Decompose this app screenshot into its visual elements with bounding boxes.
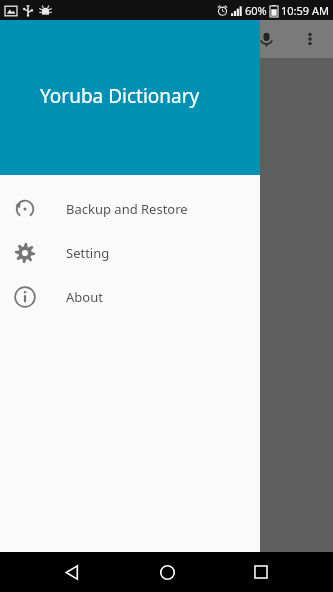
- button[interactable]: Setting: [0, 231, 260, 275]
- staticText: NEXT: [0, 241, 33, 259]
- staticText: About: [66, 288, 103, 306]
- staticText: 60%: [245, 3, 267, 18]
- button[interactable]: NEXT: [0, 241, 33, 259]
- button[interactable]: Home: [145, 552, 189, 592]
- staticText: 10:59 AM: [281, 3, 329, 18]
- staticText: Setting: [66, 244, 110, 262]
- staticText: Backup and Restore: [66, 200, 188, 218]
- button[interactable]: Voice search: [253, 26, 279, 52]
- button[interactable]: Document: [14, 186, 42, 214]
- button[interactable]: Back: [50, 552, 94, 592]
- button[interactable]: Recents: [239, 552, 283, 592]
- button[interactable]: More options: [297, 26, 323, 52]
- button[interactable]: About: [0, 275, 260, 319]
- button[interactable]: Backup and Restore: [0, 187, 260, 231]
- staticText: Yoruba Dictionary: [40, 83, 200, 109]
